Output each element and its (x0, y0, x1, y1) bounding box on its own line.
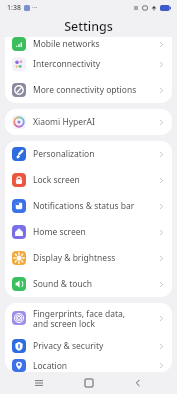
button[interactable]: Back (127, 372, 149, 394)
button[interactable]: Fingerprints, face data, and screen lock (5, 303, 172, 333)
staticText: Location (33, 360, 158, 372)
staticText: Home screen (33, 226, 158, 238)
button[interactable]: Mobile networks (5, 37, 172, 51)
button[interactable]: Privacy & security (5, 333, 172, 359)
button[interactable]: Notifications & status bar (5, 193, 172, 219)
button[interactable]: Xiaomi HyperAI (5, 109, 172, 135)
staticText: Interconnectivity (33, 58, 158, 70)
staticText: Lock screen (33, 174, 158, 186)
staticText: ··· (32, 3, 38, 13)
button[interactable]: Location (5, 359, 172, 372)
button[interactable]: Home (78, 372, 100, 394)
staticText: Mobile networks (33, 38, 158, 50)
button[interactable]: More connectivity options (5, 77, 172, 103)
button[interactable]: Personalization (5, 141, 172, 167)
staticText: Personalization (33, 148, 158, 160)
staticText: Fingerprints, face data, and screen lock (33, 308, 158, 329)
button[interactable]: Lock screen (5, 167, 172, 193)
staticText: More connectivity options (33, 84, 158, 96)
staticText: Display & brightness (33, 252, 158, 264)
staticText: Sound & touch (33, 278, 158, 290)
button[interactable]: Display & brightness (5, 245, 172, 271)
button[interactable]: Home screen (5, 219, 172, 245)
button[interactable]: Sound & touch (5, 271, 172, 297)
button[interactable]: Recent apps (28, 372, 50, 394)
staticText: 1:38 (7, 3, 21, 13)
staticText: Xiaomi HyperAI (33, 116, 158, 128)
staticText: Privacy & security (33, 340, 158, 352)
button[interactable]: Interconnectivity (5, 51, 172, 77)
staticText: Settings (64, 18, 113, 35)
staticText: Notifications & status bar (33, 200, 158, 212)
